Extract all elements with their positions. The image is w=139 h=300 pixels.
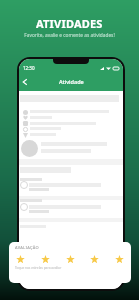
- button[interactable]: Avaliar 1 estrelas: [16, 255, 25, 264]
- button[interactable]: Back: [19, 72, 123, 91]
- button[interactable]: Back: [20, 77, 30, 87]
- button[interactable]: Avaliar 2 estrelas: [41, 255, 50, 264]
- staticText: ATIVIDADES: [36, 16, 103, 31]
- staticText: 12:30: [23, 65, 35, 71]
- button[interactable]: Avaliar 5 estrelas: [115, 255, 124, 264]
- button[interactable]: Avaliar 4 estrelas: [90, 255, 99, 264]
- staticText: Favorite, avalie e comente as atividades…: [24, 32, 115, 39]
- staticText: AVALIAÇÃO: [15, 245, 39, 250]
- staticText: Atividade: [59, 78, 84, 85]
- button[interactable]: Avaliar 3 estrelas: [66, 255, 75, 264]
- staticText: Toque nas estrelas para avaliar: [15, 266, 62, 270]
